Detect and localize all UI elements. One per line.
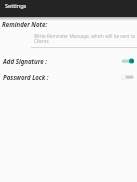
staticText: Settings (5, 2, 27, 10)
staticText: Reminder Note: (2, 20, 48, 28)
staticText: Password Lock : (3, 73, 49, 81)
staticText: Write Reminder Message, which will be se… (34, 33, 137, 44)
staticText: Add Signature : (3, 57, 47, 65)
button[interactable]: Write Reminder Message, which will be se… (31, 29, 137, 48)
button[interactable]: Add Signature : (0, 53, 137, 68)
button[interactable]: Password Lock : (0, 69, 137, 84)
button[interactable]: Enabled (120, 57, 134, 64)
button[interactable]: Disabled (120, 73, 134, 80)
